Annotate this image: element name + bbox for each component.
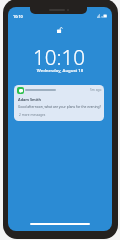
staticText: 10:10 (8, 43, 111, 71)
staticText: Wednesday, August 18 (8, 67, 112, 73)
staticText: Adam Smith (18, 97, 42, 102)
button[interactable]: 5m ago (14, 85, 104, 121)
staticText: Good afternoon, what are your plans for … (18, 104, 101, 108)
staticText: 2 more messages (19, 113, 46, 117)
staticText: 5m ago (90, 88, 102, 92)
staticText: 10:10 (13, 14, 23, 19)
